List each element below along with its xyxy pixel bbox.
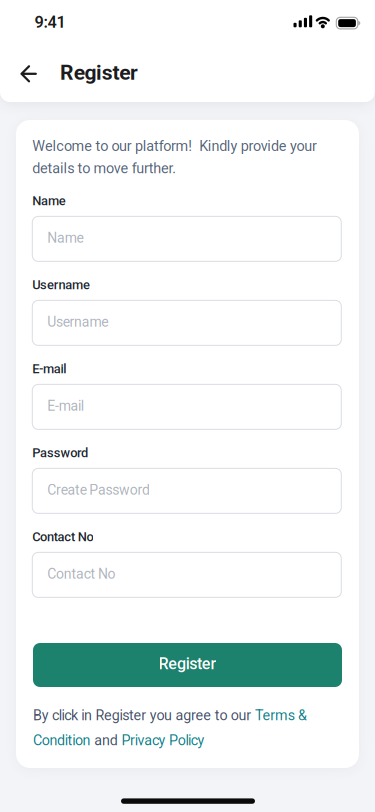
button[interactable]: Terms & [255, 707, 307, 724]
staticText: By click in Register you agree to our [33, 707, 255, 724]
textField[interactable]: E-mail [32, 392, 341, 422]
staticText: Register [158, 654, 216, 673]
staticText: Register [60, 60, 138, 85]
staticText: Contact No [32, 529, 93, 544]
staticText: Create Password [47, 482, 150, 498]
staticText: Name [32, 193, 66, 208]
textField[interactable]: Create Password [32, 476, 341, 506]
staticText: Create Password [32, 476, 212, 506]
staticText: Password [32, 445, 88, 460]
staticText: Name [47, 230, 83, 246]
staticText: Username [32, 277, 90, 292]
staticText: E-mail [32, 392, 98, 422]
textField[interactable]: Name [32, 224, 341, 254]
button[interactable]: Register [33, 643, 342, 687]
textField[interactable]: Username [32, 308, 341, 338]
staticText: Privacy Policy [121, 732, 204, 749]
staticText: E-mail [47, 398, 84, 414]
staticText: Username [47, 314, 108, 330]
staticText: Welcome to our platform! Kindly provide … [32, 138, 317, 177]
staticText: Terms & [255, 707, 307, 724]
staticText: and [91, 732, 121, 749]
staticText: Contact No [32, 560, 151, 590]
staticText: Contact No [47, 566, 116, 582]
staticText: Condition [33, 732, 91, 749]
staticText: E-mail [32, 361, 66, 376]
button[interactable]: Privacy Policy [121, 732, 204, 749]
textField[interactable]: Contact No [32, 560, 341, 590]
staticText: Name [32, 224, 96, 254]
staticText: 9:41 [34, 13, 65, 32]
staticText: Username [32, 308, 143, 338]
button[interactable]: Back [0, 44, 50, 100]
button[interactable]: Condition [33, 732, 91, 749]
